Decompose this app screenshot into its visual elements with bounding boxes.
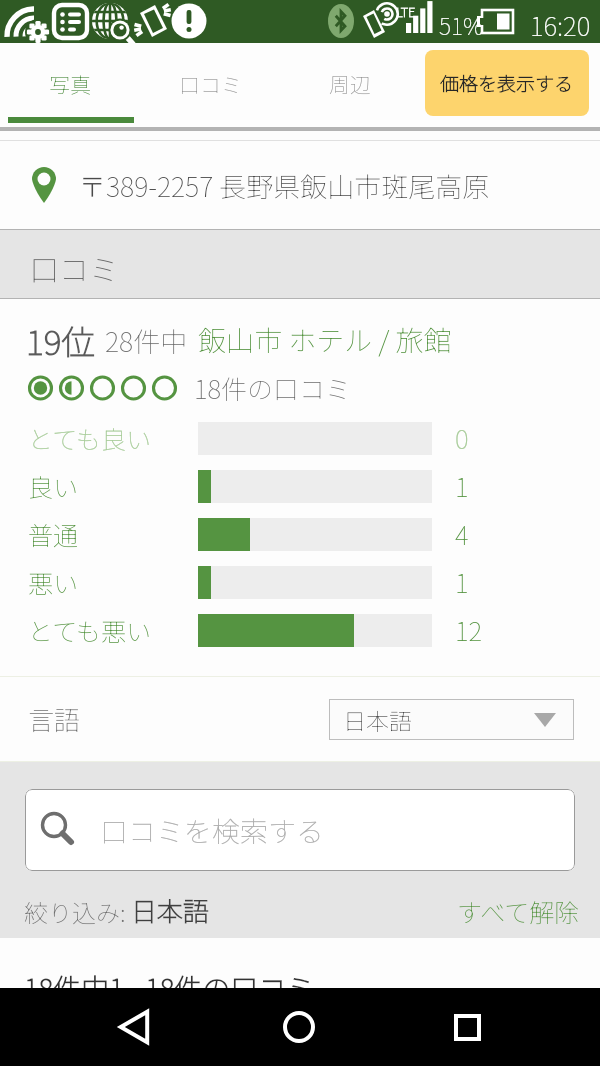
button[interactable]: 写真 [0, 43, 140, 127]
button[interactable]: 日本語 [329, 699, 574, 740]
staticText: 言語 [28, 700, 81, 738]
staticText: 写真 [49, 69, 91, 99]
button[interactable]: 飯山市 ホテル / 旅館 [198, 319, 452, 360]
staticText: 口コミ [29, 246, 119, 289]
staticText: 12 [455, 611, 483, 649]
staticText: 価格を表示する [440, 69, 574, 97]
staticText: 周辺 [329, 69, 371, 99]
button[interactable]: 価格を表示する [425, 50, 589, 116]
staticText: 日本語 [131, 891, 210, 929]
staticText: 日本語 [343, 703, 412, 736]
staticText: とても良い [28, 420, 152, 456]
button[interactable]: Back [100, 988, 168, 1066]
staticText: 4 [455, 515, 469, 553]
staticText: 0 [455, 419, 469, 457]
staticText: 口コミを検索する [100, 810, 325, 851]
staticText: 口コミ [179, 69, 242, 99]
button[interactable]: 〒389-2257 長野県飯山市斑尾高原 [0, 141, 600, 229]
staticText: とても悪い [28, 612, 152, 648]
staticText: 絞り込み: [24, 894, 131, 929]
button[interactable]: 口コミを検索する [25, 789, 575, 871]
staticText: 1 [455, 563, 469, 601]
staticText: 〒389-2257 長野県飯山市斑尾高原 [79, 166, 490, 205]
staticText: 16:20 [530, 6, 591, 44]
staticText: 19位 [26, 316, 96, 363]
staticText: 1 [455, 467, 469, 505]
button[interactable]: Home [265, 988, 333, 1066]
staticText: 普通 [28, 516, 79, 552]
staticText: LTE [396, 2, 416, 21]
button[interactable]: Recent apps [433, 988, 501, 1066]
button[interactable]: 口コミ [140, 43, 280, 127]
staticText: 18件の口コミ [194, 369, 352, 407]
staticText: 51% [439, 8, 484, 41]
staticText: 18件中1 - 18件の口コミ [24, 967, 315, 1008]
staticText: 良い [28, 468, 79, 504]
button[interactable]: 周辺 [280, 43, 420, 127]
button[interactable]: すべて解除 [457, 893, 580, 929]
staticText: 28件中 [105, 321, 188, 360]
staticText: 悪い [28, 564, 79, 600]
